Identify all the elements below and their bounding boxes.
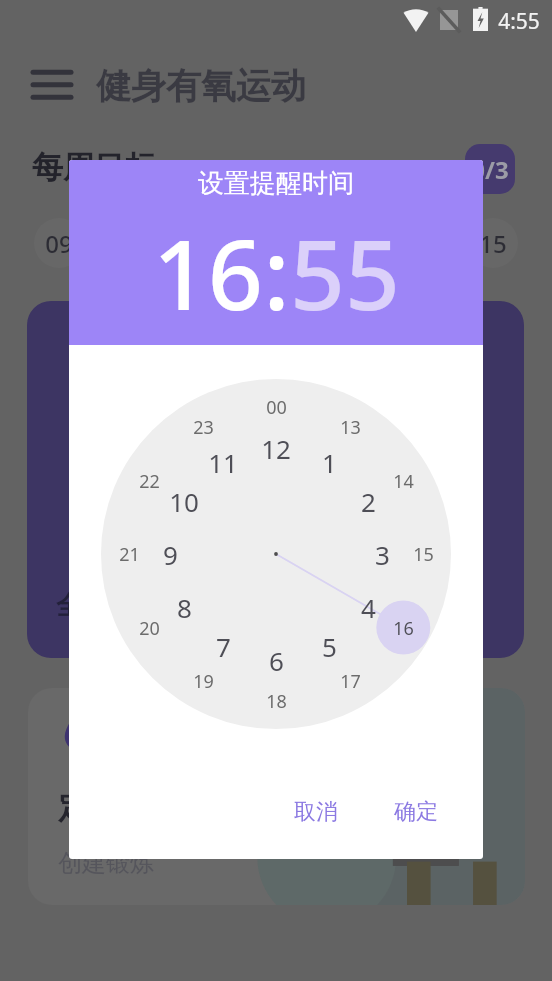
- button[interactable]: 13: [328, 405, 372, 449]
- button[interactable]: 20: [127, 606, 171, 650]
- staticText: 13: [334, 227, 362, 260]
- staticText: 12: [262, 227, 290, 260]
- button[interactable]: 19: [181, 659, 225, 703]
- staticText: 22: [139, 469, 160, 494]
- staticText: 15: [479, 227, 507, 260]
- staticText: 20: [139, 616, 160, 641]
- button[interactable]: 23: [181, 405, 225, 449]
- staticText: 7: [216, 629, 231, 664]
- button[interactable]: 0/3: [465, 144, 515, 194]
- staticText: 0/3: [471, 153, 509, 186]
- staticText: 1: [322, 445, 337, 480]
- staticText: 19: [193, 669, 214, 694]
- button[interactable]: 6: [254, 638, 298, 682]
- staticText: 全身燃脂训练: [56, 589, 212, 622]
- staticText: 设置提醒时间: [198, 167, 354, 200]
- staticText: 健身有氧运动: [96, 64, 306, 108]
- button[interactable]: Menu: [30, 63, 74, 107]
- button[interactable]: 5: [307, 624, 351, 668]
- button[interactable]: 21: [107, 532, 151, 576]
- button[interactable]: 定时锻炼: [28, 688, 525, 905]
- staticText: 11: [208, 445, 238, 480]
- staticText: 23: [193, 415, 214, 440]
- button[interactable]: 9: [148, 532, 192, 576]
- staticText: 4:55: [498, 7, 540, 36]
- button[interactable]: 11: [201, 440, 245, 484]
- staticText: :: [263, 207, 290, 338]
- button[interactable]: 13: [323, 218, 373, 268]
- button[interactable]: 10: [162, 479, 206, 523]
- button[interactable]: 18: [254, 679, 298, 723]
- button[interactable]: 12: [254, 426, 298, 470]
- staticText: 确定: [394, 798, 438, 826]
- staticText: 16: [153, 207, 263, 338]
- button[interactable]: 14: [381, 459, 425, 503]
- staticText: 10: [169, 484, 199, 519]
- staticText: 09: [45, 227, 73, 260]
- staticText: 2: [361, 484, 376, 519]
- staticText: 55: [290, 207, 400, 338]
- button[interactable]: 17: [328, 659, 372, 703]
- staticText: 18: [266, 689, 287, 714]
- staticText: 13: [340, 415, 361, 440]
- staticText: 14: [393, 469, 414, 494]
- button[interactable]: 3: [360, 532, 404, 576]
- staticText: 17: [340, 669, 361, 694]
- staticText: 4: [361, 590, 376, 625]
- staticText: 创建锻炼: [58, 848, 154, 878]
- button[interactable]: 15: [401, 532, 445, 576]
- button[interactable]: 全身燃脂训练: [27, 301, 524, 658]
- staticText: 21: [119, 542, 140, 567]
- button[interactable]: 22: [127, 459, 171, 503]
- button[interactable]: 12: [251, 218, 301, 268]
- staticText: 16: [393, 616, 414, 641]
- button[interactable]: 16: [381, 606, 425, 650]
- button[interactable]: 4: [346, 585, 390, 629]
- button[interactable]: 15: [468, 218, 518, 268]
- staticText: 5: [322, 629, 337, 664]
- staticText: 9: [163, 537, 178, 572]
- staticText: 00: [266, 395, 287, 420]
- button[interactable]: 取消: [286, 790, 346, 834]
- button[interactable]: 7: [201, 624, 245, 668]
- staticText: 8: [177, 590, 192, 625]
- button[interactable]: 11: [179, 218, 229, 268]
- button[interactable]: 2: [346, 479, 390, 523]
- button[interactable]: 8: [162, 585, 206, 629]
- staticText: 12: [261, 431, 291, 466]
- staticText: 定时锻炼: [58, 788, 182, 827]
- staticText: 取消: [294, 798, 338, 826]
- button[interactable]: 09: [34, 218, 84, 268]
- staticText: 3: [375, 537, 390, 572]
- staticText: 每周目标: [32, 148, 156, 187]
- staticText: 11: [190, 227, 218, 260]
- staticText: 6: [269, 643, 284, 678]
- button[interactable]: 确定: [386, 790, 446, 834]
- button[interactable]: 1: [307, 440, 351, 484]
- button[interactable]: 00: [254, 385, 298, 429]
- button[interactable]: 16: [153, 207, 263, 338]
- button[interactable]: 55: [290, 207, 400, 338]
- staticText: 15: [413, 542, 434, 567]
